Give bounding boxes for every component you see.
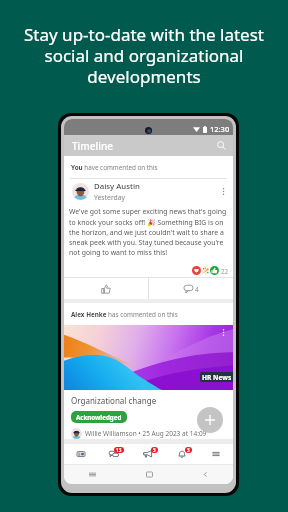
staticText: 5 (153, 447, 156, 453)
staticText: HR News (202, 373, 232, 382)
button[interactable]: More options (218, 327, 229, 338)
staticText: Organizational change (71, 395, 157, 406)
button[interactable]: Like (64, 278, 148, 299)
staticText: You have commented on this (71, 163, 158, 172)
staticText: We've got some super exciting news that'… (69, 207, 228, 257)
staticText: Willie Williamson • 25 Aug 2023 at 14:09 (85, 429, 207, 438)
staticText: Alex Henke has commented on this (71, 310, 178, 319)
button[interactable]: 4 (149, 278, 233, 299)
staticText: Daisy Austin (94, 181, 140, 192)
button[interactable]: Chats (97, 444, 131, 464)
staticText: Acknowledged (76, 413, 122, 421)
staticText: 4 (195, 285, 199, 293)
staticText: Stay up-to-date with the latest social a… (20, 23, 268, 88)
button[interactable]: Timeline (64, 444, 97, 464)
staticText: Yesterday (94, 193, 126, 202)
staticText: 22 (221, 267, 229, 275)
staticText: Timeline (72, 139, 113, 153)
button[interactable]: Create post (197, 407, 223, 433)
button[interactable]: More options (217, 185, 229, 197)
button[interactable]: Campaigns (131, 444, 165, 464)
staticText: 13 (116, 447, 122, 453)
staticText: 12:30 (210, 124, 230, 134)
button[interactable]: Notifications (165, 444, 199, 464)
button[interactable]: Search (214, 138, 229, 153)
staticText: 3 (187, 447, 190, 453)
button[interactable]: Menu (199, 444, 233, 464)
